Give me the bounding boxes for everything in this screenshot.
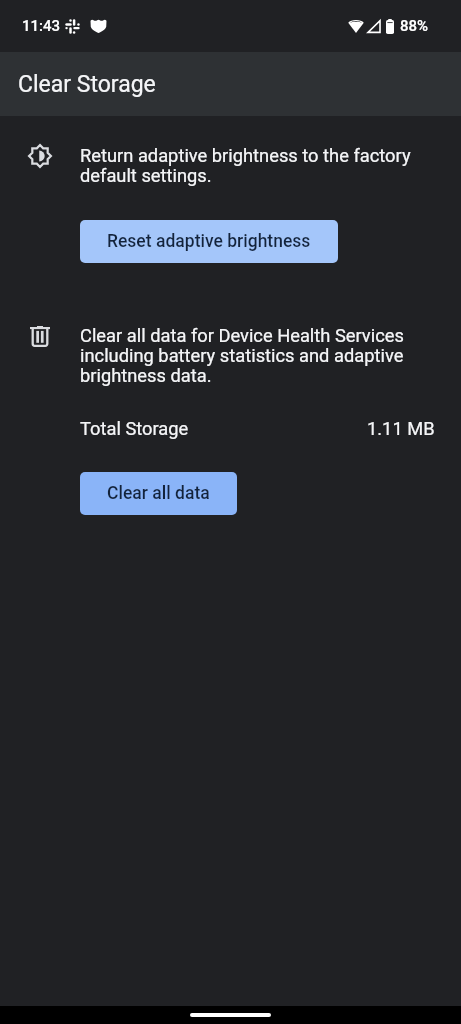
staticText: Reset adaptive brightness xyxy=(107,231,311,252)
staticText: 1.11 MB xyxy=(367,418,435,439)
staticText: Clear Storage xyxy=(18,71,156,98)
other: Delete xyxy=(30,326,50,346)
button[interactable]: Clear Storage xyxy=(0,52,461,116)
button[interactable]: Reset adaptive brightness xyxy=(80,220,338,263)
staticText: 11:43 xyxy=(22,17,61,35)
staticText: Clear all data for Device Health Service… xyxy=(80,325,414,386)
other: Adaptive brightness xyxy=(28,144,52,168)
staticText: 88% xyxy=(400,17,429,35)
button[interactable]: Clear all data xyxy=(80,472,237,515)
staticText: Clear all data xyxy=(107,483,210,504)
staticText: Return adaptive brightness to the factor… xyxy=(80,145,414,186)
staticText: Total Storage xyxy=(80,418,189,439)
